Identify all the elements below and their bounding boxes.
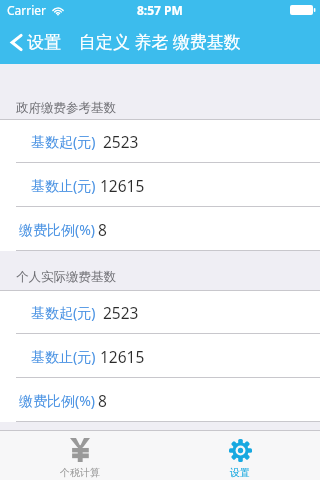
staticText: 个人实际缴费基数 xyxy=(16,269,116,285)
button[interactable]: 基数止(元) xyxy=(0,334,320,378)
staticText: 2523 xyxy=(103,302,139,323)
staticText: 基数起(元) xyxy=(31,132,96,151)
staticText: 缴费比例(%) xyxy=(19,391,96,410)
staticText: 个税计算 xyxy=(60,466,100,479)
staticText: 缴费比例(%) xyxy=(19,220,96,239)
staticText: 设置 xyxy=(230,466,250,479)
staticText: 8 xyxy=(98,390,107,411)
staticText: Carrier xyxy=(7,2,47,18)
button[interactable]: 缴费比例(%) xyxy=(0,378,320,422)
button[interactable]: 基数止(元) xyxy=(0,163,320,207)
staticText: 12615 xyxy=(100,175,145,196)
staticText: 基数止(元) xyxy=(31,176,96,195)
staticText: 8:57 PM xyxy=(137,2,183,18)
staticText: 基数起(元) xyxy=(31,303,96,322)
staticText: 8 xyxy=(98,219,107,240)
button[interactable]: 缴费比例(%) xyxy=(0,207,320,251)
button[interactable]: 设置 xyxy=(0,26,71,59)
staticText: 2523 xyxy=(103,131,139,152)
button[interactable]: 设置 xyxy=(160,431,320,480)
staticText: 12615 xyxy=(100,346,145,367)
staticText: 设置 xyxy=(27,32,61,53)
button[interactable]: 基数起(元) xyxy=(0,291,320,334)
button[interactable]: 基数起(元) xyxy=(0,120,320,163)
staticText: 基数止(元) xyxy=(31,347,96,366)
staticText: 政府缴费参考基数 xyxy=(16,100,116,116)
button[interactable]: 个税计算 xyxy=(0,431,160,480)
staticText: 自定义 养老 缴费基数 xyxy=(79,30,241,53)
